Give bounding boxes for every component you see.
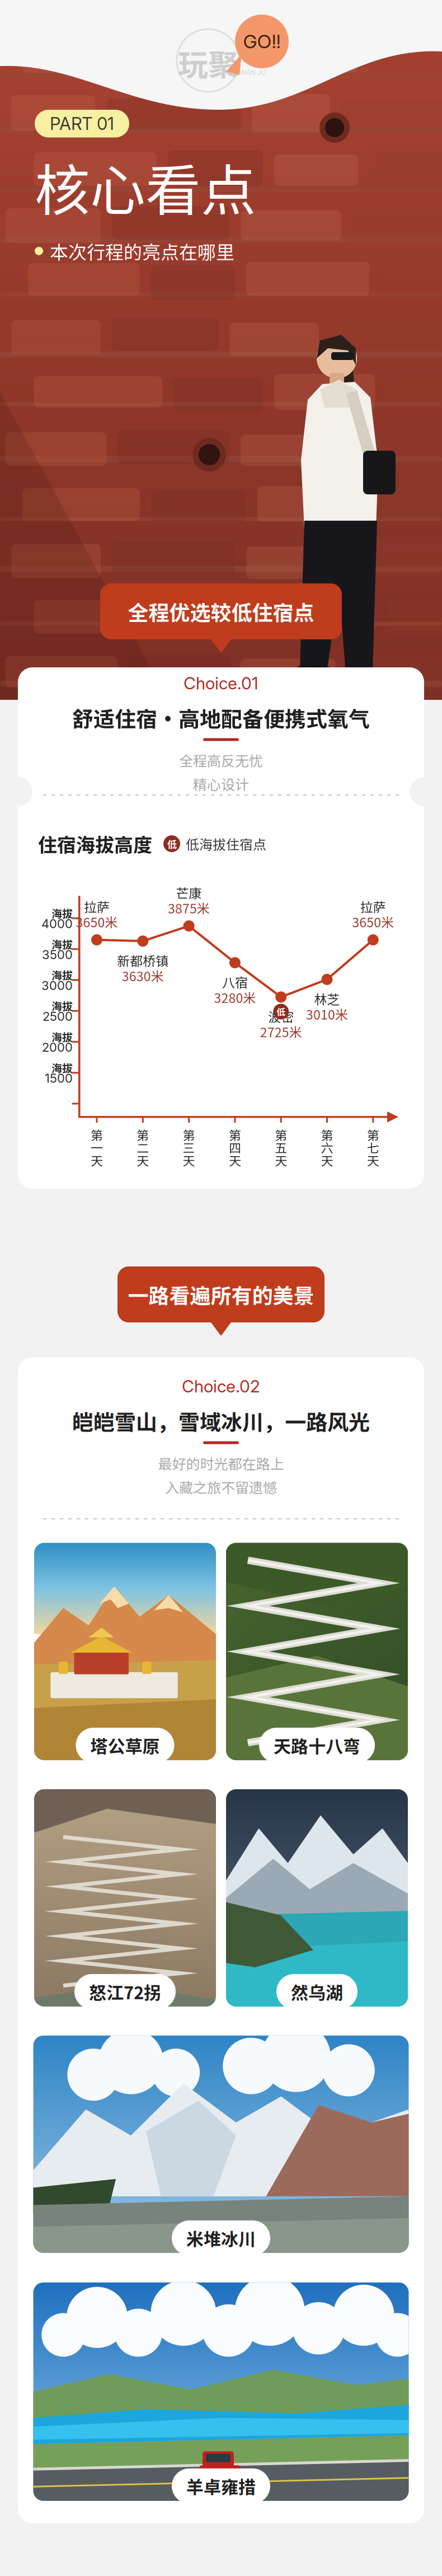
staticText: 3500 bbox=[42, 947, 73, 962]
button[interactable]: 一路看遍所有的美景 bbox=[117, 1266, 325, 1336]
staticText: 怒江72拐 bbox=[89, 1979, 161, 2004]
staticText: 核心看点 bbox=[35, 146, 256, 226]
staticText: 3000 bbox=[41, 978, 73, 993]
staticText: 3630米 bbox=[122, 966, 164, 985]
staticText: Choice.02 bbox=[182, 1376, 260, 1397]
staticText: 天 bbox=[229, 1151, 241, 1169]
staticText: 第 bbox=[91, 1126, 103, 1143]
staticText: 六 bbox=[321, 1138, 333, 1156]
staticText: 第 bbox=[275, 1126, 287, 1143]
staticText: 海拔 bbox=[51, 1029, 73, 1044]
staticText: 一 bbox=[91, 1138, 103, 1156]
staticText: 2000 bbox=[42, 1040, 73, 1055]
staticText: 新都桥镇 bbox=[117, 951, 169, 970]
staticText: 海拔 bbox=[51, 998, 73, 1013]
staticText: 精心设计 bbox=[193, 774, 249, 794]
staticText: 皑皑雪山，雪域冰川，一路风光 bbox=[72, 1405, 370, 1436]
button[interactable]: 全程优选较低住宿点 bbox=[100, 583, 342, 653]
staticText: 第 bbox=[321, 1126, 333, 1143]
staticText: 住宿海拔高度 bbox=[38, 830, 152, 858]
staticText: 3280米 bbox=[214, 988, 256, 1007]
staticText: 天 bbox=[321, 1151, 333, 1169]
staticText: 天 bbox=[183, 1151, 195, 1169]
staticText: 低 bbox=[277, 1005, 285, 1018]
staticText: Choice.01 bbox=[184, 673, 258, 693]
staticText: 五 bbox=[275, 1138, 287, 1156]
staticText: 3650米 bbox=[352, 912, 394, 931]
staticText: 海拔 bbox=[51, 936, 73, 952]
button[interactable]: 米堆冰川 bbox=[33, 2036, 409, 2253]
staticText: 二 bbox=[137, 1138, 149, 1156]
staticText: 八宿 bbox=[222, 973, 248, 991]
button[interactable]: 塔公草原 bbox=[34, 1543, 216, 1760]
staticText: 3875米 bbox=[168, 898, 210, 917]
staticText: 天 bbox=[367, 1151, 379, 1169]
staticText: 3010米 bbox=[306, 1005, 348, 1023]
staticText: 4000 bbox=[41, 916, 73, 931]
staticText: 2725米 bbox=[260, 1022, 302, 1041]
staticText: 天 bbox=[275, 1151, 287, 1169]
staticText: 三 bbox=[183, 1138, 195, 1156]
staticText: 低 bbox=[167, 837, 177, 851]
staticText: 第 bbox=[137, 1126, 149, 1143]
staticText: 入藏之旅不留遗憾 bbox=[165, 1477, 277, 1497]
staticText: 第 bbox=[229, 1126, 241, 1143]
staticText: 第 bbox=[367, 1126, 379, 1143]
staticText: 一路看遍所有的美景 bbox=[128, 1279, 314, 1309]
staticText: 拉萨 bbox=[84, 897, 110, 916]
staticText: 第 bbox=[183, 1126, 195, 1143]
staticText: 拉萨 bbox=[360, 897, 386, 916]
staticText: 波密 bbox=[268, 1007, 294, 1026]
staticText: 七 bbox=[367, 1138, 379, 1156]
staticText: PART 01 bbox=[50, 113, 114, 134]
staticText: 3650米 bbox=[76, 912, 118, 931]
staticText: 最好的时光都在路上 bbox=[158, 1453, 284, 1473]
staticText: 玩聚 bbox=[178, 41, 238, 85]
staticText: 塔公草原 bbox=[90, 1733, 160, 1758]
staticText: 天 bbox=[91, 1151, 103, 1169]
staticText: 舒适住宿·高地配备便携式氧气 bbox=[72, 702, 370, 733]
staticText: 全程高反无忧 bbox=[179, 750, 263, 770]
staticText: 羊卓雍措 bbox=[186, 2473, 256, 2499]
staticText: GO!! bbox=[243, 30, 281, 53]
button[interactable]: 天路十八弯 bbox=[226, 1543, 408, 1760]
staticText: 2500 bbox=[43, 1009, 73, 1024]
staticText: 天路十八弯 bbox=[274, 1733, 360, 1758]
staticText: 低海拔住宿点 bbox=[186, 834, 266, 853]
button[interactable]: 然乌湖 bbox=[226, 1789, 408, 2006]
staticText: 米堆冰川 bbox=[186, 2225, 256, 2251]
staticText: WAN JU bbox=[240, 69, 266, 77]
staticText: 林芝 bbox=[314, 989, 340, 1008]
staticText: 海拔 bbox=[51, 905, 73, 921]
staticText: 海拔 bbox=[51, 1060, 73, 1075]
staticText: 海拔 bbox=[51, 967, 73, 982]
staticText: 四 bbox=[229, 1138, 241, 1156]
button[interactable]: PART 01 bbox=[35, 110, 129, 137]
staticText: 全程优选较低住宿点 bbox=[128, 596, 314, 626]
staticText: 本次行程的亮点在哪里 bbox=[50, 238, 234, 264]
staticText: 1500 bbox=[45, 1071, 73, 1086]
button[interactable]: 羊卓雍措 bbox=[33, 2282, 409, 2501]
staticText: 芒康 bbox=[176, 883, 202, 902]
button[interactable]: 怒江72拐 bbox=[34, 1789, 216, 2006]
staticText: 然乌湖 bbox=[291, 1979, 343, 2004]
staticText: 天 bbox=[137, 1151, 149, 1169]
